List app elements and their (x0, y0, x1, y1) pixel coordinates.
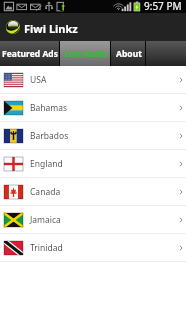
staticText: Canada (30, 186, 61, 198)
button[interactable] (146, 41, 186, 66)
button[interactable]: Trinidad (0, 234, 186, 262)
button[interactable]: USA (0, 66, 186, 94)
button[interactable]: Bahamas (0, 94, 186, 122)
staticText: Bahamas (30, 102, 68, 114)
button[interactable]: Canada (0, 178, 186, 206)
button[interactable]: Featured Ads (0, 41, 60, 66)
staticText: Barbados (30, 130, 69, 142)
other: App logo (6, 20, 20, 34)
staticText: Trinidad (30, 242, 63, 254)
button[interactable]: England (0, 150, 186, 178)
staticText: Jamaica (30, 214, 61, 226)
button[interactable]: Barbados (0, 122, 186, 150)
staticText: England (30, 158, 63, 170)
button[interactable]: About (111, 41, 146, 66)
staticText: Live Radio (64, 48, 108, 60)
button[interactable]: Jamaica (0, 206, 186, 234)
button[interactable]: Live Radio (60, 41, 111, 66)
staticText: 9:57 PM (144, 0, 182, 12)
staticText: Fiwi Linkz (24, 21, 78, 36)
staticText: About (116, 48, 142, 60)
staticText: USA (30, 74, 47, 86)
staticText: Featured Ads (2, 48, 58, 60)
